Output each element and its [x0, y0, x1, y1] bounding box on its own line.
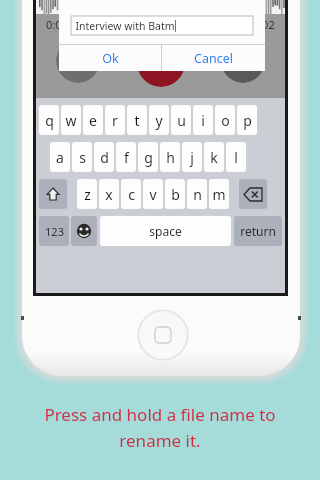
staticText: h [166, 148, 175, 167]
staticText: z [84, 185, 91, 204]
button[interactable]: Interview with Batm [71, 16, 253, 35]
staticText: e [89, 111, 97, 130]
button[interactable]: s [72, 142, 92, 172]
staticText: o [221, 111, 230, 130]
staticText: f [124, 148, 129, 167]
button[interactable]: v [143, 179, 163, 209]
button[interactable]: l [226, 142, 246, 172]
button[interactable]: o [215, 105, 235, 135]
staticText: a [56, 148, 64, 167]
button[interactable]: e [83, 105, 103, 135]
staticText: k [210, 148, 218, 167]
staticText: -0:02 [249, 17, 275, 32]
staticText: u [177, 111, 186, 130]
button[interactable]: Emoji [71, 216, 97, 246]
staticText: n [193, 185, 202, 204]
button[interactable]: y [149, 105, 169, 135]
staticText: w [65, 111, 77, 130]
button[interactable]: w [61, 105, 81, 135]
button[interactable]: a [50, 142, 70, 172]
button[interactable]: h [160, 142, 180, 172]
staticText: s [79, 148, 86, 167]
button[interactable]: Stop [56, 39, 100, 83]
staticText: Press and hold a file name to rename it. [44, 403, 276, 452]
button[interactable]: 123 [39, 216, 69, 246]
button[interactable]: return [234, 216, 282, 246]
button[interactable]: c [121, 179, 141, 209]
button[interactable]: f [116, 142, 136, 172]
staticText: New File 4 [132, 17, 185, 32]
staticText: space [149, 223, 182, 239]
staticText: v [149, 185, 157, 204]
staticText: l [234, 148, 238, 167]
staticText: b [171, 185, 180, 204]
staticText: i [201, 111, 205, 130]
staticText: x [105, 185, 113, 204]
staticText: j [190, 148, 194, 167]
button[interactable]: p [237, 105, 257, 135]
button[interactable]: g [138, 142, 158, 172]
button[interactable]: k [204, 142, 224, 172]
staticText: Ok [102, 50, 119, 67]
staticText: r [112, 111, 118, 130]
staticText: y [155, 111, 163, 130]
staticText: d [100, 148, 109, 167]
button[interactable]: Shift [39, 179, 67, 209]
button[interactable]: j [182, 142, 202, 172]
staticText: p [243, 111, 252, 130]
staticText: Cancel [194, 50, 233, 67]
button[interactable]: Ok [59, 45, 161, 71]
button[interactable]: x [99, 179, 119, 209]
staticText: Interview with Batm [75, 19, 175, 33]
staticText: m [212, 185, 226, 204]
button[interactable]: Cancel [162, 45, 265, 71]
button[interactable]: Backspace [239, 179, 267, 209]
button[interactable]: t [127, 105, 147, 135]
button[interactable]: r [105, 105, 125, 135]
button[interactable]: z [77, 179, 97, 209]
staticText: q [45, 111, 54, 130]
button[interactable]: b [165, 179, 185, 209]
button[interactable]: Play [221, 39, 265, 83]
button[interactable]: space [100, 216, 231, 246]
staticText: 123 [45, 224, 64, 239]
staticText: return [240, 223, 276, 239]
staticText: c [128, 185, 135, 204]
button[interactable]: u [171, 105, 191, 135]
button[interactable]: n [187, 179, 207, 209]
button[interactable]: q [39, 105, 59, 135]
staticText: 0:00 [46, 17, 68, 32]
staticText: t [134, 111, 140, 130]
button[interactable]: Record [137, 39, 185, 87]
button[interactable]: i [193, 105, 213, 135]
button[interactable]: m [209, 179, 229, 209]
button[interactable]: d [94, 142, 114, 172]
staticText: g [144, 148, 153, 167]
